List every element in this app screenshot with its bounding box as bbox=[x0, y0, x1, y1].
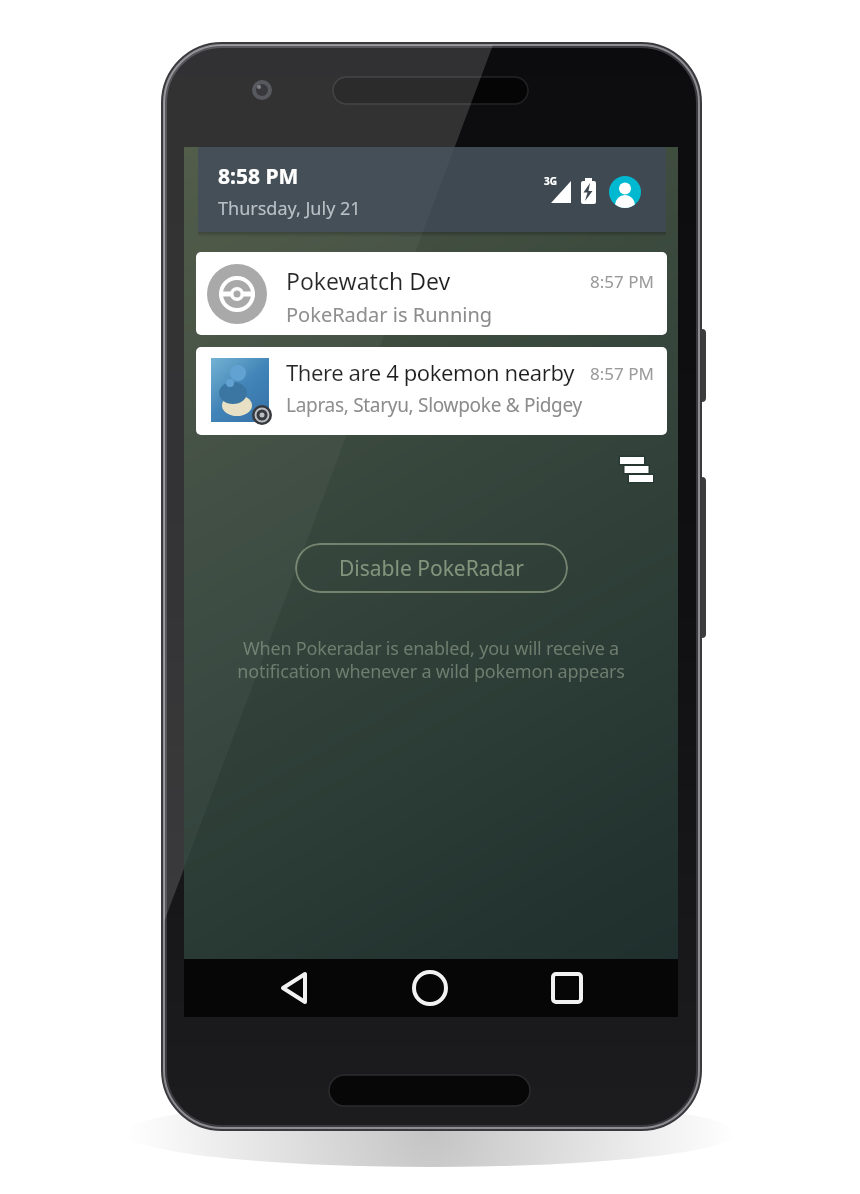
staticText: Thursday, July 21 bbox=[218, 196, 361, 221]
staticText: 8:57 PM bbox=[590, 270, 654, 293]
button[interactable] bbox=[609, 176, 641, 208]
staticText: PokeRadar is Running bbox=[286, 301, 493, 328]
staticText: There are 4 pokemon nearby bbox=[286, 357, 574, 387]
button[interactable]: Pokewatch Dev bbox=[196, 252, 667, 335]
staticText: 8:58 PM bbox=[218, 162, 299, 191]
staticText: Disable PokeRadar bbox=[339, 554, 524, 583]
button[interactable] bbox=[276, 967, 318, 1009]
button[interactable] bbox=[617, 452, 665, 496]
staticText: Pokewatch Dev bbox=[286, 265, 451, 296]
button[interactable]: Disable PokeRadar bbox=[295, 543, 568, 593]
staticText: Lapras, Staryu, Slowpoke & Pidgey bbox=[286, 392, 582, 418]
button[interactable] bbox=[409, 967, 451, 1009]
button[interactable]: There are 4 pokemon nearby bbox=[196, 347, 667, 435]
button[interactable]: 8:58 PM bbox=[198, 147, 666, 232]
staticText: When Pokeradar is enabled, you will rece… bbox=[184, 636, 678, 683]
staticText: 8:57 PM bbox=[590, 362, 654, 385]
button[interactable] bbox=[546, 967, 588, 1009]
staticText: 3G bbox=[544, 174, 557, 188]
